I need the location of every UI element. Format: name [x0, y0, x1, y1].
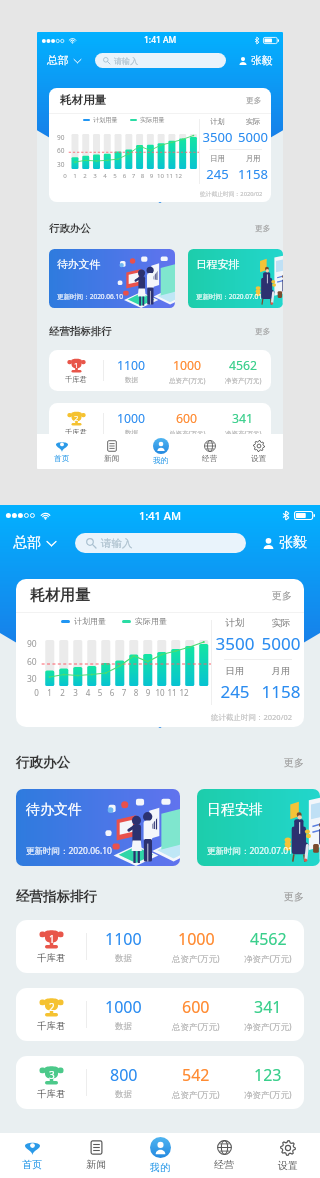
button[interactable]: 日程安排 [197, 789, 320, 866]
staticText: 净资产(万元) [225, 429, 262, 438]
staticText: 60 [57, 146, 65, 155]
button[interactable]: 张毅 [237, 52, 275, 70]
staticText: 6 [106, 687, 118, 698]
staticText: 4562 [250, 928, 287, 950]
staticText: 首页 [54, 454, 70, 464]
staticText: 2 [74, 413, 79, 423]
staticText: 千库君 [65, 375, 87, 384]
staticText: 11 [165, 171, 174, 179]
staticText: 4 [100, 171, 110, 179]
button[interactable]: Home [0, 1133, 64, 1178]
button[interactable]: Business [192, 1133, 256, 1178]
button[interactable]: 请输入 [75, 533, 246, 553]
staticText: 更新时间：2020.06.10 [26, 845, 112, 857]
button[interactable]: 总部 [11, 529, 58, 557]
button[interactable]: News [64, 1133, 128, 1178]
staticText: 800 [110, 1064, 138, 1086]
staticText: 净资产(万元) [225, 376, 262, 385]
staticText: 张毅 [251, 54, 273, 68]
button[interactable]: 张毅 [261, 532, 309, 554]
staticText: 11 [166, 687, 178, 698]
button[interactable]: 2 [16, 988, 304, 1041]
staticText: 30 [57, 160, 65, 169]
staticText: 请输入 [114, 56, 139, 66]
button[interactable]: 待办文件 [16, 789, 180, 866]
staticText: 1000 [178, 928, 215, 950]
staticText: 待办文件 [26, 801, 82, 819]
button[interactable]: 总部 [45, 50, 83, 72]
staticText: 数据 [115, 953, 132, 964]
staticText: 1:41 AM [139, 508, 182, 523]
staticText: 新闻 [86, 1158, 106, 1171]
button[interactable]: 请输入 [95, 53, 226, 68]
staticText: 9 [142, 687, 154, 698]
staticText: 总资产(万元) [172, 1021, 220, 1033]
staticText: 更多 [255, 327, 271, 337]
staticText: 更新时间：2020.06.10 [57, 292, 124, 301]
button[interactable]: 3 [49, 456, 271, 469]
staticText: 更多 [284, 756, 304, 769]
staticText: 4 [82, 687, 94, 698]
staticText: 123 [254, 1064, 282, 1086]
button[interactable]: 更多 [255, 327, 271, 337]
staticText: 1 [43, 687, 56, 698]
staticText: 日程安排 [196, 258, 239, 272]
staticText: 542 [182, 1064, 210, 1086]
staticText: 30 [27, 673, 37, 685]
staticText: 5 [110, 171, 120, 179]
staticText: 经营指标排行 [49, 325, 112, 338]
button[interactable]: 1 [16, 920, 304, 973]
button[interactable]: Settings [234, 434, 283, 469]
staticText: 实际 [258, 617, 304, 629]
staticText: 1 [74, 360, 79, 370]
button[interactable]: 1 [49, 350, 271, 391]
staticText: 5 [94, 687, 106, 698]
staticText: 日用 [212, 665, 258, 677]
staticText: 更多 [284, 890, 304, 903]
button[interactable]: 待办文件 [49, 249, 175, 308]
button[interactable]: 更多 [284, 756, 304, 769]
staticText: 341 [254, 996, 282, 1018]
staticText: 3500 [200, 128, 235, 146]
staticText: 8 [130, 687, 142, 698]
staticText: 净资产(万元) [244, 953, 292, 965]
staticText: 数据 [125, 376, 139, 384]
button[interactable]: 耗材用量 [49, 88, 271, 202]
button[interactable]: 日程安排 [188, 249, 283, 308]
staticText: 60 [27, 656, 37, 668]
staticText: 请输入 [101, 537, 133, 550]
staticText: 245 [212, 680, 258, 703]
staticText: 10 [154, 687, 166, 698]
staticText: 1 [70, 171, 80, 179]
staticText: 12 [174, 171, 183, 179]
staticText: 张毅 [279, 534, 307, 552]
staticText: 我的 [150, 1161, 170, 1174]
button[interactable]: 3 [16, 1056, 304, 1109]
button[interactable]: Business [185, 434, 234, 469]
staticText: 经营 [202, 454, 218, 464]
staticText: 更多 [255, 224, 271, 234]
staticText: 计划用量 [93, 116, 118, 124]
staticText: 3 [49, 1068, 55, 1082]
staticText: 1000 [105, 996, 142, 1018]
button[interactable]: 2 [49, 403, 271, 444]
button[interactable]: News [87, 434, 136, 469]
staticText: 1 [49, 932, 55, 946]
staticText: 90 [27, 638, 37, 650]
button[interactable]: 更多 [255, 224, 271, 234]
staticText: 600 [182, 996, 210, 1018]
staticText: 1100 [117, 357, 146, 374]
staticText: 5000 [258, 632, 304, 655]
staticText: 12 [178, 687, 190, 698]
button[interactable]: Profile [128, 1133, 192, 1178]
staticText: 5000 [235, 128, 271, 146]
staticText: 经营 [214, 1158, 234, 1171]
button[interactable]: Profile [136, 434, 185, 469]
button[interactable]: Home [37, 434, 87, 469]
button[interactable]: 更多 [284, 890, 304, 903]
button[interactable]: 耗材用量 [16, 579, 304, 727]
button[interactable]: Settings [256, 1133, 320, 1178]
